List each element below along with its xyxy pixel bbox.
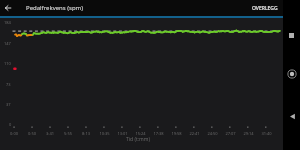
staticText: OVERLEGG bbox=[252, 5, 278, 12]
staticText: Tid (t:mm) bbox=[126, 136, 150, 143]
button[interactable]: Navigate up bbox=[0, 0, 16, 16]
staticText: 5:55 bbox=[64, 131, 72, 136]
staticText: 22:41 bbox=[189, 131, 200, 136]
staticText: 27:07 bbox=[225, 131, 236, 136]
staticText: 24:50 bbox=[207, 131, 218, 136]
button[interactable]: OVERLEGG bbox=[247, 0, 283, 16]
staticText: 13:01 bbox=[117, 131, 128, 136]
staticText: Pedalfrekvens (spm) bbox=[26, 4, 83, 12]
staticText: 8:13 bbox=[82, 131, 90, 136]
staticText: 3:41 bbox=[46, 131, 54, 136]
staticText: 0:00 bbox=[10, 131, 18, 136]
staticText: 15:24 bbox=[135, 131, 146, 136]
staticText: 147 bbox=[4, 41, 11, 46]
staticText: 10:35 bbox=[99, 131, 110, 136]
staticText: 184 bbox=[4, 20, 11, 25]
staticText: 19:58 bbox=[171, 131, 182, 136]
staticText: 29:14 bbox=[243, 131, 254, 136]
staticText: 73 bbox=[6, 82, 11, 87]
staticText: 37 bbox=[6, 102, 11, 107]
staticText: 110 bbox=[4, 61, 11, 66]
button[interactable]: Recent apps bbox=[285, 29, 297, 41]
staticText: 17:38 bbox=[153, 131, 164, 136]
staticText: 31:40 bbox=[261, 131, 272, 136]
staticText: 0 bbox=[9, 122, 12, 127]
button[interactable]: Back bbox=[285, 109, 299, 123]
staticText: 0:50 bbox=[28, 131, 36, 136]
button[interactable]: Home bbox=[285, 67, 299, 81]
